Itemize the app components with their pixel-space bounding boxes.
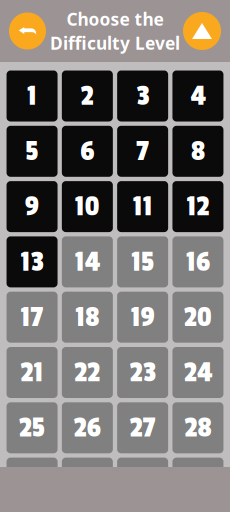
staticText: 20: [184, 300, 212, 334]
staticText: 30: [73, 466, 101, 500]
button[interactable]: 17: [6, 292, 57, 343]
staticText: 8: [191, 134, 205, 168]
button[interactable]: 21: [6, 347, 57, 398]
staticText: 22: [74, 356, 100, 389]
staticText: 17: [20, 300, 43, 334]
staticText: Choose the: [66, 7, 163, 30]
staticText: 14: [75, 245, 100, 279]
staticText: 7: [136, 134, 149, 168]
staticText: 15: [131, 245, 154, 279]
staticText: 5: [25, 134, 38, 168]
staticText: 3: [136, 79, 149, 113]
staticText: 31: [131, 466, 154, 500]
staticText: 29: [18, 466, 45, 500]
staticText: 18: [75, 300, 99, 334]
button[interactable]: 26: [62, 402, 113, 453]
staticText: 9: [25, 190, 39, 223]
button[interactable]: 23: [117, 347, 168, 398]
button[interactable]: 14: [62, 236, 113, 287]
button[interactable]: 10: [62, 181, 113, 232]
staticText: 24: [184, 356, 212, 389]
staticText: 16: [186, 245, 210, 279]
button[interactable]: 30: [62, 458, 113, 509]
button[interactable]: 9: [6, 181, 57, 232]
button[interactable]: 18: [62, 292, 113, 343]
button[interactable]: 19: [117, 292, 168, 343]
button[interactable]: 4: [172, 70, 223, 121]
button[interactable]: 15: [117, 236, 168, 287]
button[interactable]: 32: [172, 458, 223, 509]
button[interactable]: 28: [172, 402, 223, 453]
button[interactable]: Back: [9, 12, 46, 49]
staticText: 23: [130, 356, 156, 389]
button[interactable]: 12: [172, 181, 223, 232]
staticText: 11: [133, 190, 153, 223]
button[interactable]: 27: [117, 402, 168, 453]
button[interactable]: 5: [6, 126, 57, 177]
button[interactable]: 1: [6, 70, 57, 121]
staticText: 27: [130, 411, 156, 445]
staticText: 32: [185, 466, 211, 500]
staticText: Difficulty Level: [50, 31, 180, 54]
button[interactable]: 24: [172, 347, 223, 398]
button[interactable]: 29: [6, 458, 57, 509]
staticText: 13: [20, 245, 43, 279]
button[interactable]: 2: [62, 70, 113, 121]
button[interactable]: 22: [62, 347, 113, 398]
staticText: 1: [27, 79, 37, 113]
staticText: 25: [19, 411, 45, 445]
button[interactable]: 7: [117, 126, 168, 177]
staticText: 21: [20, 356, 43, 389]
staticText: 12: [186, 190, 209, 223]
staticText: 19: [131, 300, 155, 334]
staticText: 28: [184, 411, 211, 445]
button[interactable]: 3: [117, 70, 168, 121]
staticText: 2: [81, 79, 94, 113]
button[interactable]: 11: [117, 181, 168, 232]
staticText: 26: [74, 411, 101, 445]
button[interactable]: 16: [172, 236, 223, 287]
staticText: 10: [75, 190, 100, 223]
button[interactable]: 31: [117, 458, 168, 509]
staticText: 4: [190, 79, 205, 113]
staticText: 6: [80, 134, 94, 168]
button[interactable]: 25: [6, 402, 57, 453]
button[interactable]: 13: [6, 236, 57, 287]
button[interactable]: 8: [172, 126, 223, 177]
button[interactable]: 20: [172, 292, 223, 343]
button[interactable]: Scroll up: [183, 12, 221, 50]
button[interactable]: 6: [62, 126, 113, 177]
